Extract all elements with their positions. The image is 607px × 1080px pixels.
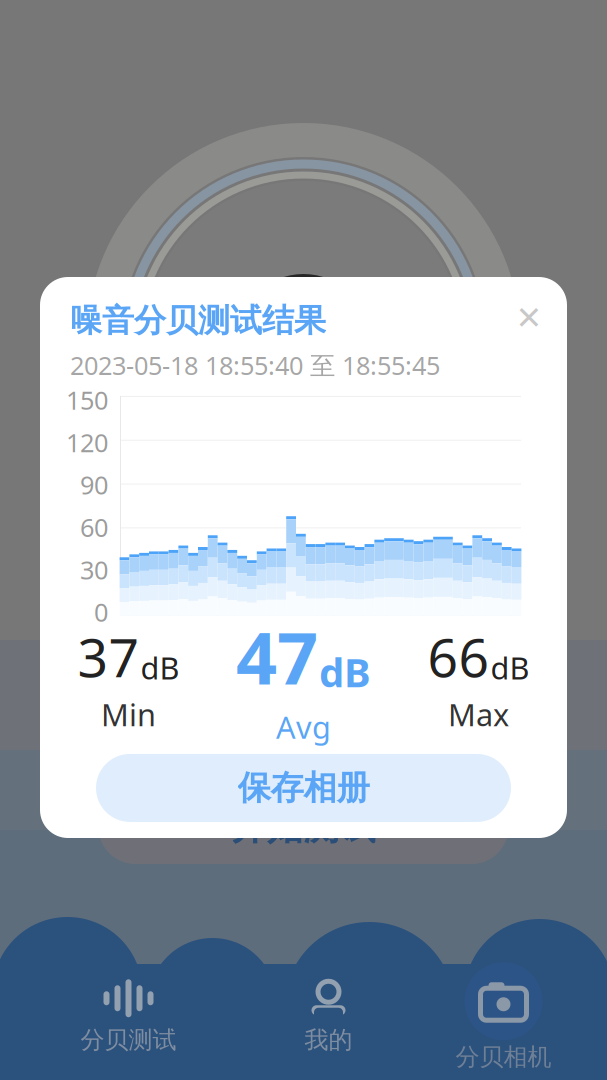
button[interactable]: 保存相册 — [96, 754, 511, 822]
staticText: 噪音分贝测试结果 — [70, 301, 326, 340]
button[interactable]: 关闭 — [509, 301, 549, 335]
staticText: Avg — [276, 706, 331, 747]
staticText: 66 — [427, 621, 489, 692]
staticText: 60 — [80, 510, 108, 544]
staticText: 90 — [80, 468, 108, 501]
staticText: 保存相册 — [237, 767, 369, 808]
staticText: 开始测试 — [231, 805, 375, 849]
staticText: 37 — [77, 621, 139, 692]
button[interactable]: 分贝测试 — [28, 972, 228, 1062]
button[interactable]: 我的 — [228, 972, 428, 1062]
staticText: dB — [490, 647, 529, 688]
staticText: dB — [319, 645, 371, 698]
staticText: 2023-05-18 18:55:40 至 18:55:45 — [70, 348, 440, 382]
staticText: 0 — [94, 595, 108, 629]
staticText: 分贝相机 — [455, 1042, 551, 1072]
staticText: 150 — [66, 383, 108, 417]
button[interactable]: 开始测试 — [98, 790, 508, 864]
staticText: 30 — [80, 553, 108, 586]
staticText: Max — [448, 694, 509, 735]
staticText: 分贝测试 — [80, 1025, 176, 1055]
button[interactable]: 分贝相机 — [428, 952, 578, 1080]
staticText: 我的 — [304, 1025, 352, 1055]
staticText: ✕ — [515, 300, 542, 336]
staticText: 120 — [66, 425, 108, 459]
staticText: 47 — [236, 609, 318, 704]
staticText: Min — [101, 694, 156, 735]
staticText: dB — [140, 647, 179, 688]
